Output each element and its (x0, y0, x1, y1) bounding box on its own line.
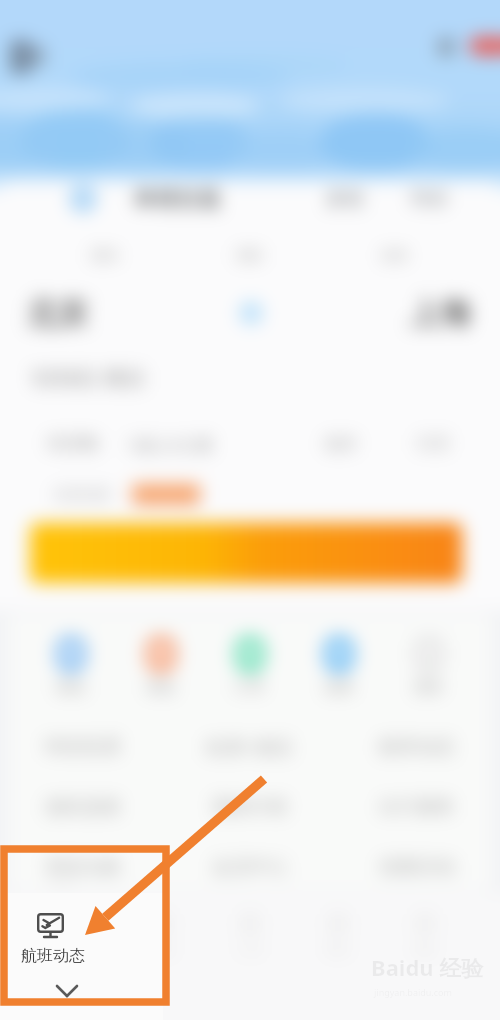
staticText: 出行服务 (379, 795, 455, 819)
staticText: 经济舱 (48, 433, 99, 454)
staticText: 首页 (62, 941, 88, 957)
staticText: 上海 (409, 294, 471, 333)
staticText: 发现 (149, 941, 175, 957)
staticText: 行李 (235, 678, 265, 697)
staticText: 单程往返 (133, 186, 221, 212)
staticText: 北京 (27, 294, 89, 333)
staticText: 特价 (411, 187, 449, 211)
staticText: 多程 (326, 187, 364, 211)
staticText: 航班动态 (21, 946, 85, 966)
staticText: 9月8日 周日 (32, 364, 146, 393)
button[interactable]: 航班动态 Flight status (0, 893, 163, 1020)
staticText: 优惠活动 (379, 855, 455, 879)
staticText: 退改 (146, 678, 176, 697)
staticText: 值机 (56, 678, 86, 697)
staticText: Baidu 经验 (371, 952, 484, 982)
staticText: 选座 (324, 678, 354, 697)
staticText: 我的行程 (212, 795, 288, 819)
